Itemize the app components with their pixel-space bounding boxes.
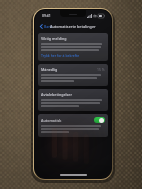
button[interactable]: Viktig melding om kontoen [38, 33, 108, 61]
button[interactable]: Månedlig kapasitet [38, 64, 108, 86]
button[interactable]: Bank [38, 23, 55, 30]
button[interactable]: Trykk her for å bekrefte [41, 53, 80, 58]
staticText: Trykk her for å bekrefte [41, 53, 80, 58]
staticText: 15 % [97, 67, 105, 72]
staticText: Bank [44, 24, 53, 29]
staticText: 09:41 [42, 13, 51, 18]
staticText: Månedlig kapasitet [41, 67, 69, 72]
button[interactable]: Automatisk betaling på [94, 117, 105, 123]
staticText: Automatiserte betalinger [50, 24, 96, 29]
staticText: Automatisk betaling [41, 118, 67, 123]
staticText: Avtalebetingelser [41, 92, 72, 97]
staticText: Viktig melding om kontoen [41, 36, 73, 41]
button[interactable]: Automatisk betaling [38, 114, 108, 137]
button[interactable]: Avtalebetingelser [38, 89, 108, 111]
